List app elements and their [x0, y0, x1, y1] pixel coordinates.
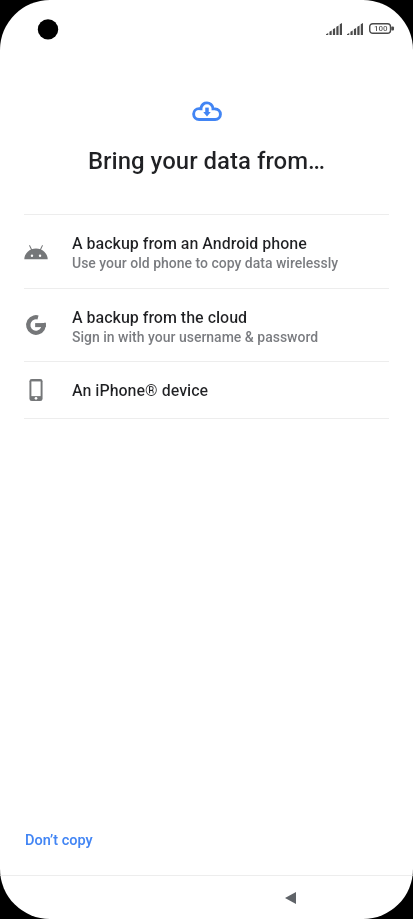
staticText: Don’t copy	[25, 832, 93, 849]
staticText: Sign in with your username & password	[72, 329, 319, 345]
button[interactable]: A backup from an Android phone	[0, 215, 413, 288]
staticText: A backup from an Android phone	[72, 234, 307, 253]
staticText: 100	[374, 24, 388, 33]
button[interactable]: Don’t copy	[13, 824, 105, 857]
staticText: A backup from the cloud	[72, 308, 248, 327]
staticText: Use your old phone to copy data wireless…	[72, 255, 339, 271]
button[interactable]: An iPhone® device	[0, 362, 413, 418]
staticText: An iPhone® device	[72, 381, 209, 400]
button[interactable]: Back	[266, 876, 314, 919]
staticText: Bring your data from…	[0, 147, 413, 175]
button[interactable]: A backup from the cloud	[0, 289, 413, 361]
